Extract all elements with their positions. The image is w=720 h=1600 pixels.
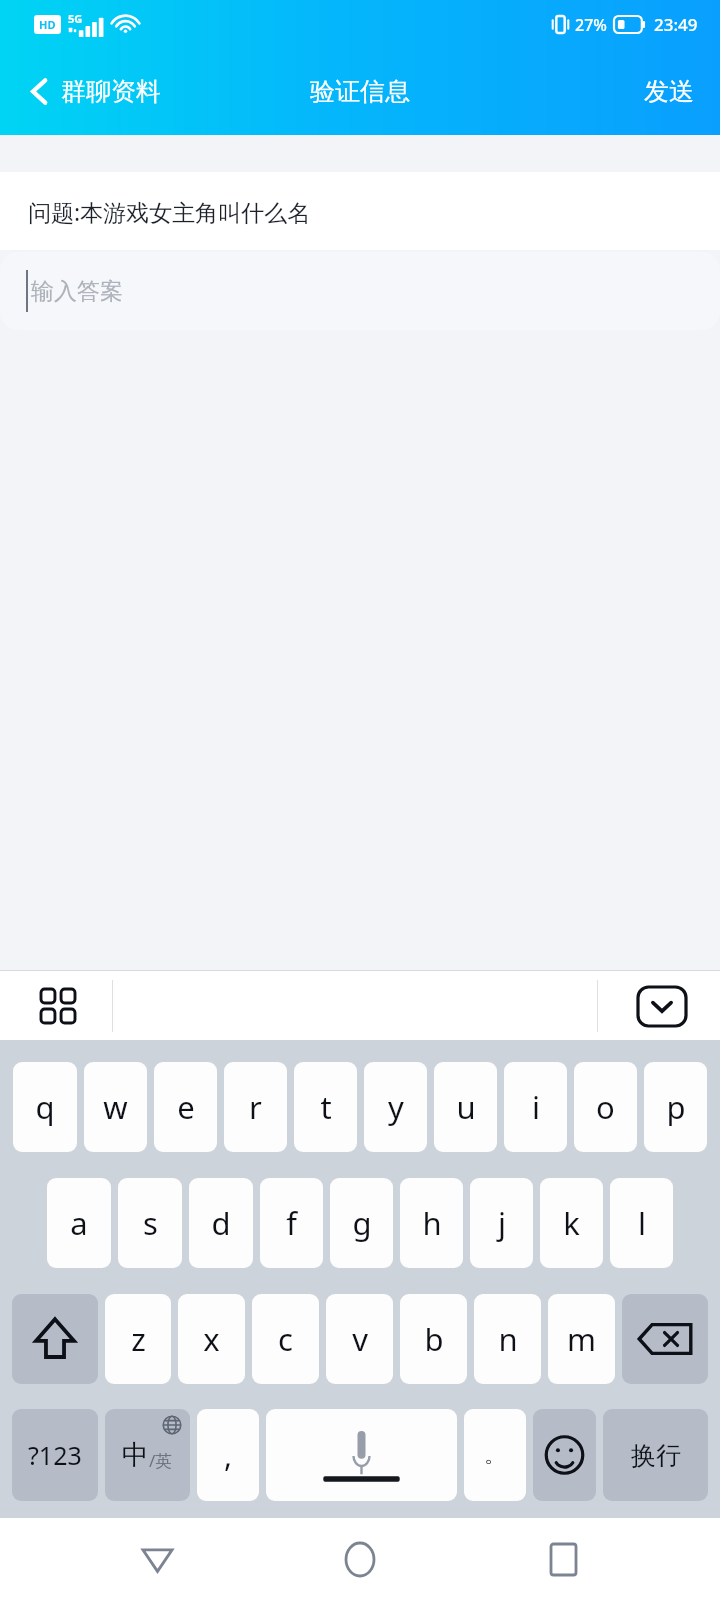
other: Back — [30, 76, 49, 107]
button[interactable]: f — [260, 1178, 323, 1268]
button[interactable]: w — [84, 1062, 147, 1152]
staticText: r — [249, 1086, 262, 1128]
button[interactable]: s — [118, 1178, 182, 1268]
button[interactable]: t — [294, 1062, 357, 1152]
staticText: c — [278, 1318, 293, 1360]
staticText: 问题:本游戏女主角叫什么名 — [28, 196, 311, 227]
staticText: k — [563, 1202, 580, 1244]
button[interactable]: ?123 — [12, 1409, 98, 1501]
staticText: 23:49 — [654, 13, 698, 36]
staticText: 。 — [484, 1441, 506, 1469]
staticText: 群聊资料 — [61, 76, 161, 107]
button[interactable]: a — [47, 1178, 111, 1268]
button[interactable]: Backspace — [622, 1294, 708, 1384]
staticText: ?123 — [28, 1438, 82, 1472]
staticText: e — [177, 1086, 195, 1128]
button[interactable]: Back — [0, 64, 175, 119]
staticText: s — [143, 1202, 158, 1244]
button[interactable]: v — [326, 1294, 393, 1384]
staticText: 27% — [575, 14, 607, 36]
button[interactable]: u — [434, 1062, 497, 1152]
staticText: j — [498, 1202, 506, 1244]
button[interactable]: m — [548, 1294, 615, 1384]
staticText: o — [596, 1086, 615, 1128]
button[interactable]: 输入答案 — [0, 252, 720, 330]
button[interactable]: e — [154, 1062, 217, 1152]
staticText: a — [70, 1202, 88, 1244]
button[interactable]: i — [504, 1062, 567, 1152]
button[interactable]: d — [189, 1178, 253, 1268]
staticText: /英 — [149, 1449, 173, 1472]
staticText: w — [103, 1086, 128, 1128]
button[interactable]: l — [610, 1178, 673, 1268]
button[interactable]: Input methods — [20, 975, 96, 1037]
staticText: g — [352, 1202, 372, 1244]
staticText: y — [388, 1086, 404, 1128]
button[interactable]: g — [330, 1178, 393, 1268]
button[interactable]: Emoji — [533, 1409, 596, 1501]
button[interactable]: b — [400, 1294, 467, 1384]
button[interactable]: n — [474, 1294, 541, 1384]
staticText: HD — [39, 17, 56, 32]
button[interactable]: 问题:本游戏女主角叫什么名 — [0, 172, 720, 250]
staticText: p — [666, 1086, 686, 1128]
button[interactable]: Shift — [12, 1294, 98, 1384]
staticText: 输入答案 — [31, 277, 123, 306]
staticText: h — [422, 1202, 442, 1244]
button[interactable]: j — [470, 1178, 533, 1268]
button[interactable]: p — [644, 1062, 707, 1152]
staticText: 发送 — [644, 76, 694, 107]
button[interactable]: 。 — [464, 1409, 526, 1501]
staticText: q — [35, 1086, 55, 1128]
button[interactable]: Home — [314, 1524, 406, 1594]
staticText: d — [211, 1202, 231, 1244]
button[interactable]: 中 — [105, 1409, 190, 1501]
button[interactable]: 换行 — [603, 1409, 708, 1501]
button[interactable]: Hide keyboard — [632, 978, 692, 1034]
button[interactable]: q — [13, 1062, 77, 1152]
staticText: m — [567, 1318, 596, 1360]
button[interactable]: y — [364, 1062, 427, 1152]
button[interactable]: 发送 — [626, 64, 720, 119]
staticText: u — [456, 1086, 476, 1128]
button[interactable]: Recents — [517, 1524, 609, 1594]
button[interactable]: Space — [266, 1409, 457, 1501]
staticText: , — [224, 1435, 233, 1476]
staticText: 验证信息 — [310, 76, 410, 107]
button[interactable]: z — [105, 1294, 171, 1384]
staticText: l — [638, 1202, 646, 1244]
staticText: 换行 — [631, 1440, 681, 1471]
staticText: n — [498, 1318, 518, 1360]
button[interactable]: r — [224, 1062, 287, 1152]
button[interactable]: , — [197, 1409, 259, 1501]
staticText: b — [424, 1318, 444, 1360]
staticText: f — [286, 1202, 297, 1244]
staticText: x — [203, 1318, 220, 1360]
staticText: 中 — [122, 1438, 149, 1472]
button[interactable]: c — [252, 1294, 319, 1384]
staticText: i — [532, 1086, 540, 1128]
button[interactable]: h — [400, 1178, 463, 1268]
button[interactable]: Back — [111, 1524, 203, 1594]
staticText: t — [320, 1086, 332, 1128]
staticText: v — [352, 1318, 368, 1360]
button[interactable]: k — [540, 1178, 603, 1268]
staticText: 5G — [68, 11, 83, 26]
button[interactable]: x — [178, 1294, 245, 1384]
staticText: z — [131, 1318, 146, 1360]
button[interactable]: o — [574, 1062, 637, 1152]
